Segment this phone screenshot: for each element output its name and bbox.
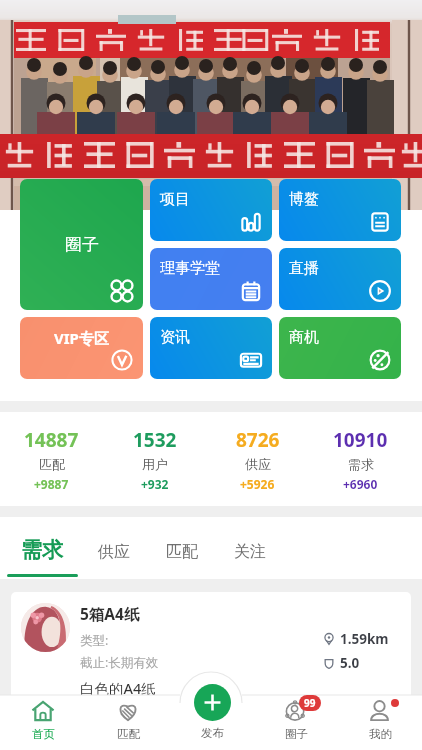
staticText: 5箱A4纸 (80, 603, 140, 624)
staticText: VIP专区 (54, 328, 109, 348)
staticText: 发布 (201, 726, 224, 739)
staticText: 供应 (98, 542, 130, 562)
staticText: 圈子 (285, 727, 308, 741)
button[interactable]: 8726 (206, 427, 309, 492)
staticText: 用户 (142, 456, 168, 472)
button[interactable]: 发布 (170, 695, 254, 750)
button[interactable]: 我的 (338, 695, 422, 750)
staticText: 首页 (32, 727, 55, 741)
staticText: 关注 (234, 542, 266, 562)
button[interactable]: 14887 (0, 427, 103, 492)
button[interactable]: 99 (254, 695, 338, 750)
button[interactable]: 需求 (5, 517, 79, 579)
staticText: 1.59km (340, 630, 389, 648)
staticText: 14887 (24, 427, 79, 453)
staticText: 圈子 (65, 234, 99, 255)
button[interactable]: 直播 (279, 248, 401, 310)
staticText: 99 (304, 696, 316, 710)
staticText: 需求 (348, 456, 374, 472)
button[interactable]: 商机 (279, 317, 401, 379)
button[interactable]: 理事学堂 (150, 248, 272, 310)
staticText: 项目 (160, 190, 190, 209)
staticText: 直播 (289, 259, 319, 278)
staticText: +932 (141, 476, 169, 492)
button[interactable]: 1532 (103, 427, 206, 492)
staticText: 匹配 (117, 727, 140, 741)
button[interactable]: 关注 (216, 517, 284, 579)
staticText: 截止:长期有效 (80, 654, 159, 671)
staticText: 需求 (21, 537, 63, 563)
button[interactable]: VIP专区 (20, 317, 143, 379)
staticText: 5.0 (340, 654, 360, 672)
button[interactable]: 10910 (309, 427, 412, 492)
staticText: 博鳌 (289, 190, 319, 209)
staticText: 资讯 (160, 328, 190, 347)
staticText: 匹配 (39, 456, 65, 472)
staticText: +6960 (343, 476, 378, 492)
staticText: 类型: (80, 632, 109, 649)
staticText: +9887 (34, 476, 69, 492)
button[interactable]: 博鳌 (279, 179, 401, 241)
staticText: 理事学堂 (160, 259, 220, 278)
staticText: 我的 (369, 727, 392, 741)
button[interactable]: 首页 (0, 695, 85, 750)
staticText: 白色的A4纸 (80, 678, 156, 698)
button[interactable]: 圈子 (20, 179, 143, 310)
button[interactable]: 资讯 (150, 317, 272, 379)
staticText: 1532 (133, 427, 177, 453)
button[interactable]: 匹配 (148, 517, 216, 579)
button[interactable]: 项目 (150, 179, 272, 241)
button[interactable]: 供应 (79, 517, 148, 579)
button[interactable]: 匹配 (85, 695, 170, 750)
staticText: 商机 (289, 328, 319, 347)
staticText: 8726 (236, 427, 280, 453)
staticText: 10910 (333, 427, 388, 453)
staticText: +5926 (240, 476, 275, 492)
staticText: 供应 (245, 456, 271, 472)
staticText: 匹配 (166, 542, 198, 562)
button[interactable]: 5箱A4纸 (11, 592, 411, 710)
